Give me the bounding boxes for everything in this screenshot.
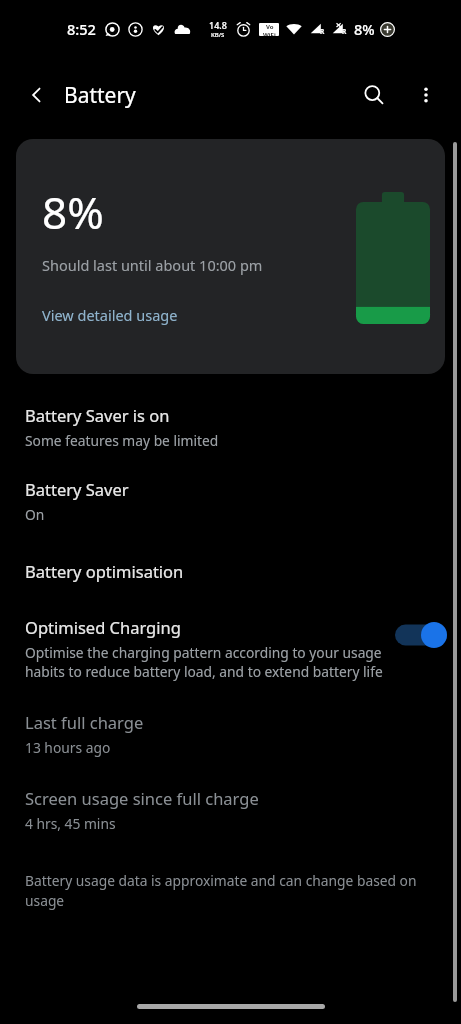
staticText: Optimised Charging — [25, 616, 181, 638]
staticText: R — [320, 27, 325, 36]
staticText: Battery usage data is approximate and ca… — [25, 871, 449, 910]
staticText: 8:52 — [67, 19, 96, 39]
button[interactable]: Screen usage since full charge — [0, 787, 461, 833]
button[interactable]: Back — [14, 73, 58, 117]
staticText: Last full charge — [25, 711, 144, 733]
staticText: 4 hrs, 45 mins — [25, 814, 116, 833]
button[interactable]: Optimised Charging toggle — [395, 622, 447, 648]
button[interactable]: More options — [405, 74, 447, 116]
button[interactable]: Battery optimisation — [0, 560, 461, 582]
button[interactable]: Battery Saver — [0, 478, 461, 524]
staticText: Some features may be limited — [25, 431, 219, 450]
button[interactable]: Last full charge — [0, 711, 461, 757]
staticText: 14.8 — [209, 19, 227, 31]
staticText: Battery Saver — [25, 478, 129, 500]
button[interactable]: Search — [351, 72, 397, 118]
staticText: WiFi — [263, 31, 276, 36]
button[interactable]: 8% — [16, 139, 445, 374]
staticText: Vo — [266, 23, 274, 31]
staticText: 8% — [42, 182, 104, 242]
button[interactable]: View detailed usage — [42, 305, 178, 325]
staticText: 13 hours ago — [25, 738, 111, 757]
staticText: Should last until about 10:00 pm — [42, 255, 263, 275]
staticText: On — [25, 505, 45, 524]
staticText: Battery optimisation — [25, 560, 184, 582]
staticText: Battery — [64, 81, 136, 110]
staticText: Battery Saver is on — [25, 404, 170, 426]
staticText: KB/S — [211, 31, 225, 39]
button[interactable]: Optimised Charging — [0, 616, 461, 681]
staticText: Screen usage since full charge — [25, 787, 259, 809]
staticText: Optimise the charging pattern according … — [25, 643, 383, 681]
staticText: R — [342, 27, 347, 36]
button[interactable]: Battery Saver is on — [0, 404, 461, 450]
staticText: 8% — [354, 19, 375, 39]
